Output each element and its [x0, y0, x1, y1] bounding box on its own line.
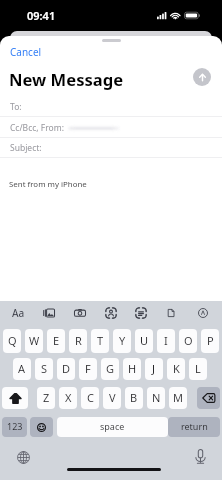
button[interactable]: Insert photo: [41, 301, 57, 325]
button[interactable]: Attach file: [163, 301, 179, 325]
staticText: P: [207, 333, 214, 348]
staticText: M: [173, 390, 183, 405]
staticText: E: [53, 333, 60, 348]
button[interactable]: Send: [193, 68, 211, 86]
staticText: Cancel: [10, 45, 42, 59]
button[interactable]: Aa: [10, 301, 27, 325]
button[interactable]: T: [91, 329, 109, 353]
button[interactable]: I: [157, 329, 175, 353]
button[interactable]: U: [135, 329, 153, 353]
button[interactable]: return: [168, 417, 220, 437]
staticText: W: [29, 333, 40, 348]
button[interactable]: Subject:: [0, 138, 222, 158]
button[interactable]: Cc/Bcc, From:: [0, 117, 222, 138]
staticText: 09:41: [27, 8, 56, 23]
staticText: Cc/Bcc, From:: [10, 122, 64, 134]
staticText: T: [97, 333, 104, 348]
button[interactable]: Take photo: [72, 301, 88, 325]
staticText: space: [100, 420, 125, 432]
button[interactable]: Draw: [195, 301, 211, 325]
button[interactable]: Emoji: [30, 417, 53, 437]
button[interactable]: Z: [37, 387, 55, 409]
button[interactable]: 123: [2, 417, 27, 437]
staticText: C: [87, 390, 94, 405]
staticText: F: [85, 361, 91, 376]
button[interactable]: A: [13, 358, 31, 380]
staticText: I: [164, 333, 168, 348]
staticText: R: [75, 333, 82, 348]
button[interactable]: D: [57, 358, 75, 380]
staticText: J: [152, 361, 156, 376]
button[interactable]: Cancel: [0, 42, 222, 61]
button[interactable]: X: [59, 387, 77, 409]
button[interactable]: M: [169, 387, 187, 409]
button[interactable]: W: [25, 329, 43, 353]
staticText: A: [18, 361, 26, 376]
button[interactable]: B: [125, 387, 143, 409]
staticText: Z: [43, 390, 50, 405]
staticText: S: [41, 361, 48, 376]
staticText: return: [181, 420, 208, 432]
button[interactable]: Scan document: [133, 301, 149, 325]
staticText: N: [152, 390, 161, 405]
button[interactable]: Y: [113, 329, 131, 353]
staticText: G: [106, 361, 115, 376]
staticText: Q: [8, 333, 17, 348]
button[interactable]: Markup: [103, 301, 119, 325]
button[interactable]: K: [167, 358, 185, 380]
staticText: To:: [10, 101, 22, 113]
staticText: V: [109, 390, 116, 405]
button[interactable]: J: [145, 358, 163, 380]
staticText: X: [65, 390, 72, 405]
button[interactable]: L: [189, 358, 207, 380]
button[interactable]: P: [201, 329, 219, 353]
button[interactable]: Dictation: [195, 449, 206, 464]
button[interactable]: E: [47, 329, 65, 353]
button[interactable]: Shift: [2, 387, 28, 409]
button[interactable]: F: [79, 358, 97, 380]
staticText: O: [184, 333, 193, 348]
button[interactable]: Backspace: [197, 387, 220, 409]
staticText: K: [173, 361, 180, 376]
staticText: New Message: [9, 68, 124, 91]
staticText: D: [62, 361, 71, 376]
staticText: Sent from my iPhone: [9, 179, 87, 190]
staticText: B: [130, 390, 138, 405]
button[interactable]: V: [103, 387, 121, 409]
button[interactable]: H: [123, 358, 141, 380]
button[interactable]: To:: [0, 97, 222, 117]
button[interactable]: Q: [3, 329, 21, 353]
button[interactable]: space: [57, 417, 168, 437]
button[interactable]: O: [179, 329, 197, 353]
staticText: U: [140, 333, 149, 348]
staticText: Subject:: [10, 142, 42, 154]
button[interactable]: C: [81, 387, 99, 409]
button[interactable]: N: [147, 387, 165, 409]
button[interactable]: R: [69, 329, 87, 353]
staticText: Y: [119, 333, 126, 348]
button[interactable]: Change keyboard: [17, 451, 30, 464]
staticText: H: [128, 361, 137, 376]
staticText: Aa: [12, 306, 25, 320]
button[interactable]: S: [35, 358, 53, 380]
staticText: 123: [7, 420, 23, 432]
button[interactable]: G: [101, 358, 119, 380]
staticText: L: [195, 361, 201, 376]
